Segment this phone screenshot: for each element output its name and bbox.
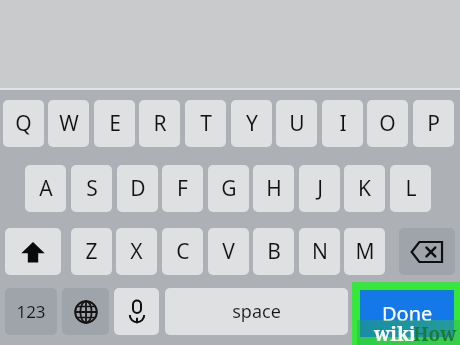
staticText: A [39,174,53,203]
staticText: R [153,109,167,138]
staticText: C [176,237,190,266]
staticText: wiki [374,321,416,345]
staticText: O [379,109,396,138]
staticText: L [405,174,417,203]
button[interactable]: P [413,100,454,147]
button[interactable]: Change keyboard language [62,288,109,335]
button[interactable]: Q [3,100,44,147]
staticText: How [413,321,457,345]
staticText: M [355,237,375,266]
staticText: 123 [16,300,46,323]
staticText: D [130,174,146,203]
button[interactable]: A [25,165,66,212]
button[interactable]: 123 [5,288,57,335]
button[interactable]: X [116,228,157,275]
button[interactable]: E [94,100,135,147]
button[interactable]: J [299,165,340,212]
staticText: X [130,237,143,266]
button[interactable]: N [299,228,340,275]
button[interactable]: R [139,100,180,147]
button[interactable]: C [162,228,203,275]
staticText: P [427,109,440,138]
button[interactable]: Z [71,228,112,275]
button[interactable]: Y [231,100,272,147]
button[interactable]: M [344,228,385,275]
staticText: E [109,109,121,138]
button[interactable]: space [165,288,348,335]
staticText: U [289,109,305,138]
staticText: G [221,174,237,203]
staticText: F [177,174,188,203]
button[interactable]: F [162,165,203,212]
button[interactable]: G [208,165,249,212]
staticText: J [317,174,323,203]
staticText: space [232,299,281,324]
button[interactable]: W [48,100,89,147]
staticText: T [200,109,212,138]
staticText: Z [85,237,98,266]
staticText: Q [15,109,32,138]
staticText: Done [382,300,433,327]
staticText: B [267,237,281,266]
button[interactable]: B [253,228,294,275]
staticText: K [358,174,371,203]
staticText: I [339,109,347,138]
button[interactable]: S [71,165,112,212]
button[interactable]: H [253,165,294,212]
button[interactable]: V [208,228,249,275]
button[interactable]: I [322,100,363,147]
staticText: N [312,237,328,266]
button[interactable]: Shift [5,228,61,275]
button[interactable]: Done [360,290,454,337]
staticText: Y [246,109,258,138]
button[interactable]: U [276,100,317,147]
button[interactable]: D [117,165,158,212]
button[interactable]: L [390,165,431,212]
button[interactable]: Voice input [114,288,159,335]
staticText: H [266,174,282,203]
staticText: V [222,237,235,266]
button[interactable]: Backspace [399,228,455,275]
button[interactable]: T [185,100,226,147]
button[interactable]: O [367,100,408,147]
button[interactable]: K [344,165,385,212]
staticText: W [59,109,79,138]
staticText: S [86,174,98,203]
